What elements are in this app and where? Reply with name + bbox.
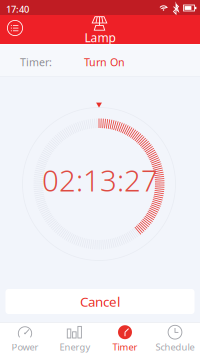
button[interactable]: Timer [100, 322, 150, 355]
button[interactable]: Schedule [150, 322, 200, 355]
button[interactable]: Timer: [0, 44, 200, 77]
button[interactable]: Menu [4, 17, 26, 39]
button[interactable]: Power [0, 322, 50, 355]
staticText: Timer: [20, 55, 52, 69]
staticText: 02:13:27 [42, 160, 158, 199]
staticText: Energy [59, 341, 90, 353]
staticText: Turn On [84, 55, 125, 69]
staticText: Schedule [155, 341, 194, 353]
button[interactable]: Energy [50, 322, 100, 355]
staticText: Timer [112, 341, 137, 353]
staticText: Cancel [80, 293, 120, 310]
staticText: Lamp [84, 29, 115, 45]
staticText: 17:40 [6, 3, 29, 15]
button[interactable]: Cancel [5, 289, 194, 314]
staticText: Power [11, 341, 38, 353]
